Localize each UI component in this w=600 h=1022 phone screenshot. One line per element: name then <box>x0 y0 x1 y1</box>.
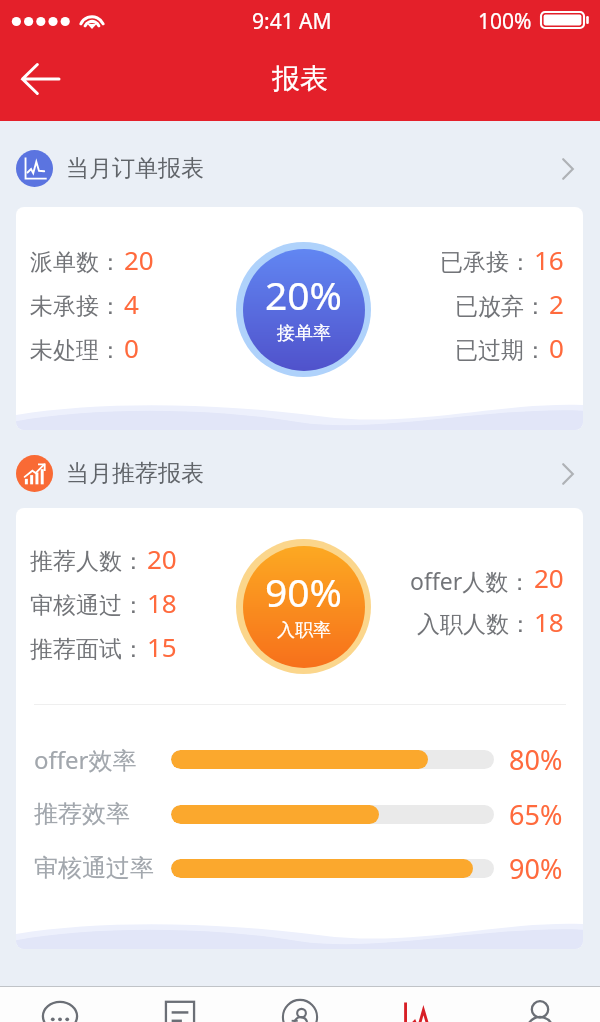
staticText: 16 <box>534 242 564 277</box>
staticText: 已承接： <box>440 248 532 277</box>
staticText: 当月推荐报表 <box>66 459 204 488</box>
staticText: 推荐效率 <box>34 799 130 829</box>
button[interactable]: 当月订单报表 <box>0 121 600 207</box>
staticText: 已过期： <box>455 336 547 365</box>
staticText: 15 <box>147 629 177 664</box>
staticText: 推荐面试： <box>30 635 145 664</box>
staticText: 0 <box>549 330 564 365</box>
staticText: 18 <box>534 604 564 639</box>
button[interactable]: Back <box>14 53 66 105</box>
staticText: 4 <box>124 286 139 321</box>
staticText: 20 <box>147 541 177 576</box>
staticText: 接单率 <box>277 322 331 345</box>
staticText: offer人数： <box>410 565 532 596</box>
staticText: 当月订单报表 <box>66 154 204 183</box>
staticText: 90% <box>509 850 563 887</box>
button[interactable]: 当月推荐报表 <box>0 430 600 508</box>
staticText: 0 <box>124 330 139 365</box>
staticText: 65% <box>509 796 563 833</box>
button[interactable]: Profile <box>480 987 600 1022</box>
staticText: 90% <box>265 565 343 618</box>
staticText: 入职人数： <box>417 610 532 639</box>
staticText: 报表 <box>272 61 328 96</box>
staticText: 100% <box>478 7 532 36</box>
button[interactable]: Orders <box>120 987 240 1022</box>
staticText: 20% <box>265 268 343 321</box>
staticText: 20 <box>534 560 564 595</box>
button[interactable]: 派单数： <box>16 207 583 430</box>
staticText: 已放弃： <box>455 292 547 321</box>
staticText: 派单数： <box>30 248 122 277</box>
staticText: 9:41 AM <box>252 7 332 36</box>
staticText: 推荐人数： <box>30 547 145 576</box>
staticText: 审核通过率 <box>34 853 154 883</box>
staticText: 20 <box>124 242 154 277</box>
staticText: 2 <box>549 286 564 321</box>
button[interactable]: 推荐人数： <box>16 508 583 949</box>
button[interactable]: Contacts <box>240 987 360 1022</box>
staticText: 未处理： <box>30 336 122 365</box>
staticText: 入职率 <box>277 619 331 642</box>
button[interactable]: Reports <box>360 987 480 1022</box>
staticText: 未承接： <box>30 292 122 321</box>
staticText: 审核通过： <box>30 591 145 620</box>
staticText: 18 <box>147 585 177 620</box>
button[interactable]: Messages <box>0 987 120 1022</box>
staticText: offer效率 <box>34 743 137 776</box>
staticText: 80% <box>509 741 563 778</box>
